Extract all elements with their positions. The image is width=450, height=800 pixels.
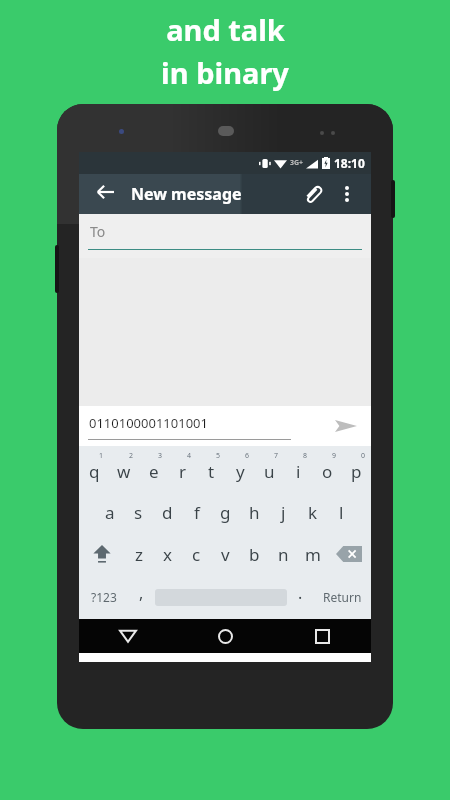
button[interactable]: m	[298, 533, 327, 575]
button[interactable]: c	[182, 533, 211, 575]
button[interactable]: Space	[155, 575, 287, 619]
staticText: r	[179, 460, 187, 483]
staticText: 4	[187, 451, 192, 461]
staticText: n	[278, 543, 289, 566]
button[interactable]: Attach	[295, 177, 329, 211]
button[interactable]: To	[79, 214, 371, 258]
button[interactable]: s	[124, 491, 153, 533]
button[interactable]: 0	[342, 446, 371, 491]
staticText: g	[220, 501, 231, 524]
button[interactable]: x	[153, 533, 182, 575]
button[interactable]: 3	[139, 446, 168, 491]
staticText: s	[134, 501, 143, 524]
button[interactable]: More options	[331, 178, 363, 210]
staticText: .	[298, 582, 303, 604]
button[interactable]: ?123	[79, 575, 128, 619]
staticText: u	[264, 460, 275, 483]
staticText: ,	[139, 582, 144, 604]
staticText: and talk	[166, 10, 285, 49]
button[interactable]: 8	[284, 446, 313, 491]
staticText: 0110100001101001	[89, 414, 208, 432]
button[interactable]: f	[182, 491, 211, 533]
button[interactable]: g	[211, 491, 240, 533]
staticText: f	[194, 501, 200, 524]
button[interactable]: Backspace	[327, 533, 371, 575]
staticText: 7	[274, 451, 279, 461]
staticText: 3	[158, 451, 163, 461]
staticText: d	[162, 501, 173, 524]
button[interactable]: j	[269, 491, 298, 533]
staticText: t	[208, 460, 215, 483]
staticText: i	[296, 460, 301, 483]
staticText: in binary	[161, 53, 289, 92]
button[interactable]: 1	[79, 446, 109, 491]
button[interactable]: b	[240, 533, 269, 575]
button[interactable]: Home	[177, 619, 274, 653]
button[interactable]: h	[240, 491, 269, 533]
button[interactable]: .	[287, 575, 314, 619]
staticText: q	[89, 460, 100, 483]
button[interactable]: Back	[87, 174, 123, 210]
staticText: Return	[323, 589, 362, 605]
button[interactable]: Return	[314, 575, 371, 619]
staticText: 8	[303, 451, 308, 461]
staticText: 3G+	[290, 158, 304, 168]
button[interactable]: ,	[128, 575, 155, 619]
staticText: x	[163, 543, 172, 566]
button[interactable]: 5	[197, 446, 226, 491]
staticText: z	[135, 543, 143, 566]
staticText: 18:10	[334, 155, 365, 171]
staticText: 5	[216, 451, 221, 461]
button[interactable]: Back	[79, 619, 177, 653]
button[interactable]: l	[327, 491, 356, 533]
button[interactable]: Send	[329, 409, 363, 443]
staticText: l	[339, 501, 344, 524]
button[interactable]: Recents	[274, 619, 371, 653]
staticText: 6	[245, 451, 250, 461]
staticText: a	[105, 501, 115, 524]
staticText: New message	[131, 183, 242, 205]
staticText: e	[149, 460, 159, 483]
staticText: 0	[361, 451, 366, 461]
staticText: o	[322, 460, 333, 483]
staticText: y	[236, 460, 245, 483]
staticText: p	[351, 460, 362, 483]
staticText: k	[308, 501, 318, 524]
button[interactable]: 9	[313, 446, 342, 491]
button[interactable]: 6	[226, 446, 255, 491]
staticText: j	[281, 501, 286, 524]
button[interactable]: a	[95, 491, 124, 533]
staticText: c	[192, 543, 201, 566]
button[interactable]: z	[124, 533, 153, 575]
button[interactable]: k	[298, 491, 327, 533]
button[interactable]: 4	[168, 446, 197, 491]
button[interactable]: Shift	[79, 533, 124, 575]
button[interactable]: 7	[255, 446, 284, 491]
button[interactable]: n	[269, 533, 298, 575]
staticText: m	[305, 543, 321, 566]
staticText: w	[117, 460, 131, 483]
staticText: 9	[332, 451, 337, 461]
staticText: b	[249, 543, 260, 566]
staticText: h	[249, 501, 260, 524]
staticText: To	[90, 222, 106, 241]
button[interactable]: d	[153, 491, 182, 533]
staticText: ?123	[91, 589, 117, 605]
staticText: v	[221, 543, 230, 566]
staticText: 1	[99, 451, 104, 461]
button[interactable]: v	[211, 533, 240, 575]
staticText: 2	[129, 451, 134, 461]
button[interactable]: 2	[109, 446, 139, 491]
